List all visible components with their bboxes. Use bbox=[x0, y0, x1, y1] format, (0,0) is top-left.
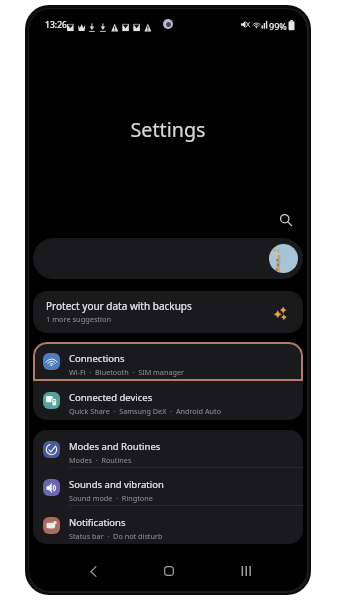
button[interactable]: Modes and Routines bbox=[33, 430, 303, 468]
staticText: 1 more suggestion bbox=[46, 314, 112, 324]
staticText: Status bar · Do not disturb bbox=[69, 531, 163, 541]
button[interactable]: Recent apps bbox=[233, 558, 259, 584]
button[interactable]: Sounds and vibration bbox=[33, 468, 303, 506]
staticText: 13:26 bbox=[45, 19, 68, 31]
button[interactable]: Back bbox=[80, 558, 106, 584]
button[interactable]: Search settings bbox=[33, 238, 303, 279]
staticText: Modes · Routines bbox=[69, 455, 132, 465]
staticText: Wi-Fi · Bluetooth · SIM manager bbox=[69, 367, 185, 377]
button[interactable]: Search bbox=[272, 206, 300, 234]
staticText: Quick Share · Samsung DeX · Android Auto bbox=[69, 406, 222, 416]
button[interactable]: Notifications bbox=[33, 506, 303, 544]
button[interactable]: Home bbox=[156, 558, 182, 584]
button[interactable]: Profile bbox=[269, 244, 298, 273]
button[interactable]: Protect your data with backups bbox=[33, 291, 303, 333]
staticText: Connections bbox=[69, 352, 125, 365]
staticText: Sounds and vibration bbox=[69, 478, 164, 491]
staticText: Notifications bbox=[69, 516, 126, 529]
staticText: Protect your data with backups bbox=[46, 299, 192, 313]
button[interactable]: Connections bbox=[33, 342, 303, 381]
staticText: 99% bbox=[269, 20, 287, 32]
staticText: Sound mode · Ringtone bbox=[69, 493, 153, 503]
staticText: Modes and Routines bbox=[69, 440, 161, 453]
staticText: Settings bbox=[29, 116, 307, 143]
staticText: Connected devices bbox=[69, 391, 153, 404]
button[interactable]: Connected devices bbox=[33, 381, 303, 420]
